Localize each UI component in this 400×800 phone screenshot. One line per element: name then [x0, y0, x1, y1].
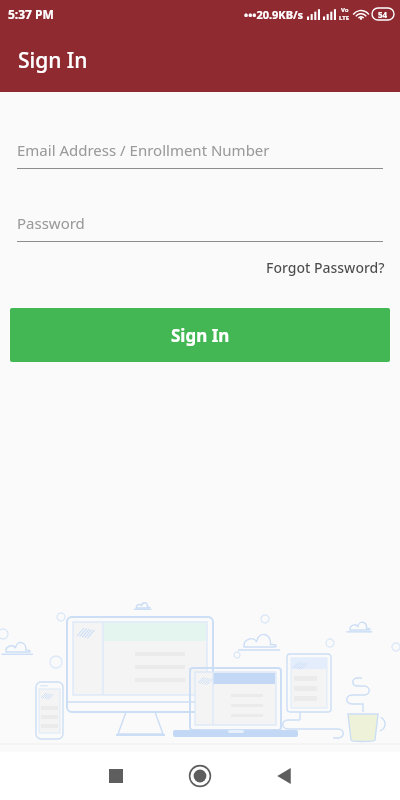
button[interactable]: Email Address / Enrollment Number [17, 140, 383, 169]
staticText: •••20.9KB/s [244, 7, 304, 22]
staticText: Password [17, 213, 85, 233]
button[interactable]: Forgot Password? [251, 254, 400, 281]
staticText: Email Address / Enrollment Number [17, 140, 270, 160]
staticText: 5:37 PM [8, 6, 54, 22]
button[interactable]: Password [17, 213, 383, 242]
staticText: 54 [378, 9, 388, 20]
staticText: Sign In [18, 46, 88, 75]
button[interactable]: Back [262, 754, 306, 798]
staticText: Forgot Password? [266, 258, 385, 277]
button[interactable]: Home [178, 754, 222, 798]
staticText: Sign In [171, 324, 230, 347]
staticText: Vo [341, 6, 349, 14]
staticText: LTE [339, 14, 350, 22]
button[interactable]: Recent apps [94, 754, 138, 798]
button[interactable]: Sign In [10, 308, 390, 362]
